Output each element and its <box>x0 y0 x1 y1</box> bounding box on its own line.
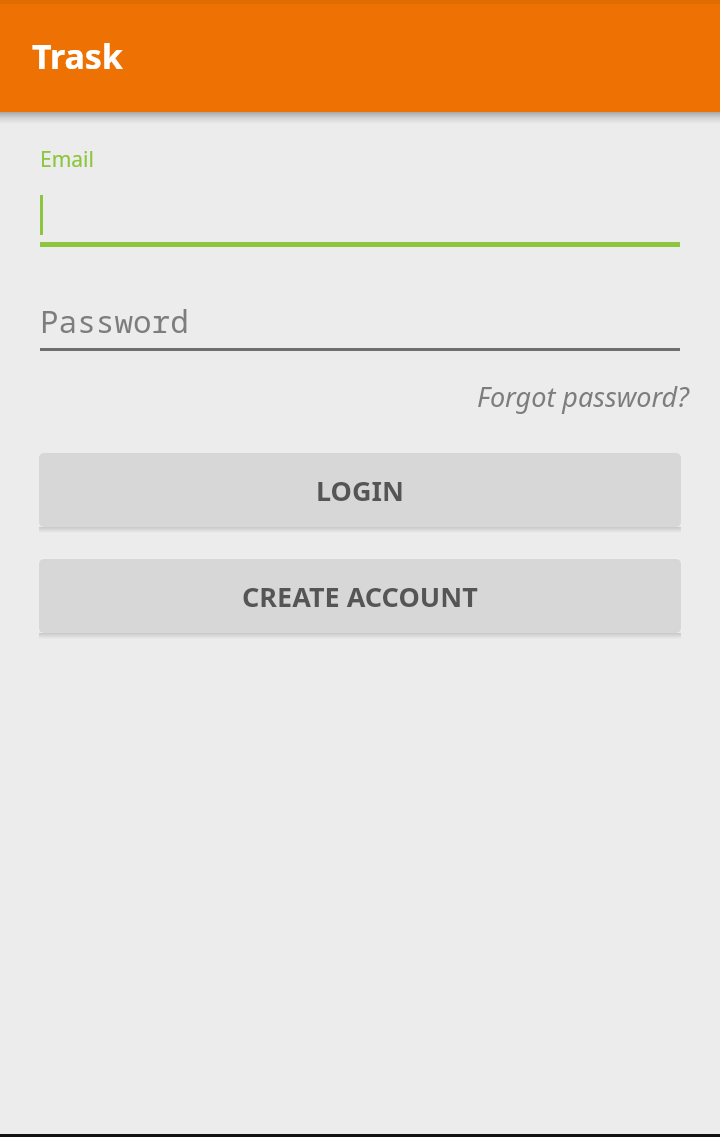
staticText: Password <box>40 300 189 342</box>
staticText: Trask <box>32 33 123 79</box>
staticText: Email <box>40 145 94 174</box>
staticText: CREATE ACCOUNT <box>242 578 478 615</box>
button[interactable]: LOGIN <box>39 453 681 527</box>
button[interactable]: Forgot password? <box>477 378 689 415</box>
button[interactable]: Password <box>40 296 680 351</box>
staticText: LOGIN <box>316 472 404 509</box>
button[interactable]: CREATE ACCOUNT <box>39 559 681 633</box>
button[interactable]: Email <box>40 145 680 247</box>
